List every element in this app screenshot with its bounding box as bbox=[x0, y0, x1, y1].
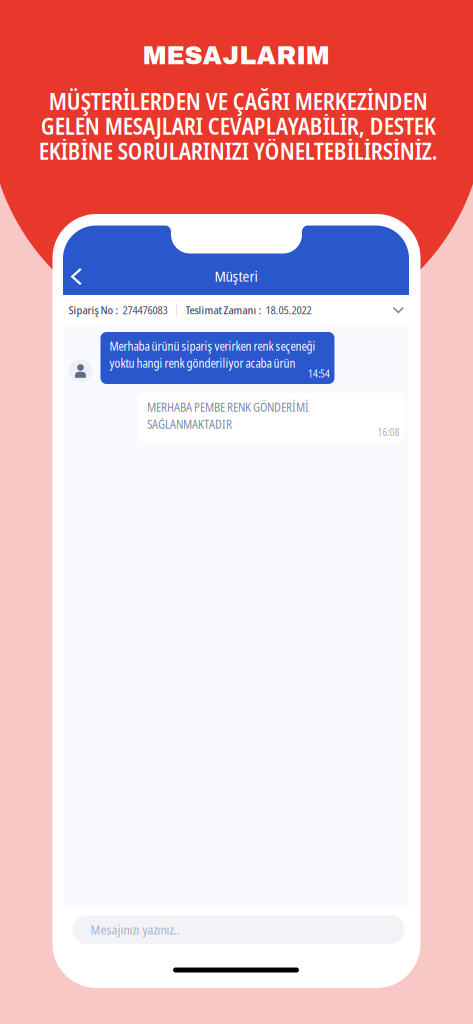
button[interactable]: Back bbox=[59, 260, 93, 294]
staticText: Teslimat Zamanı : bbox=[185, 302, 261, 318]
staticText: MÜŞTERİLERDEN VE ÇAĞRI MERKEZİNDEN GELEN… bbox=[38, 86, 437, 166]
staticText: 16:08 bbox=[377, 425, 399, 439]
button[interactable]: Mesajınızı yazınız.. bbox=[72, 915, 404, 944]
staticText: Mesajınızı yazınız.. bbox=[90, 921, 179, 938]
staticText: MESAJLARIM bbox=[142, 42, 329, 70]
button[interactable]: Sipariş No : bbox=[63, 295, 409, 325]
staticText: 274476083 bbox=[118, 302, 167, 318]
staticText: Merhaba ürünü sipariş verirken renk seçe… bbox=[109, 338, 315, 371]
staticText: 18.05.2022 bbox=[261, 302, 311, 318]
staticText: 14:54 bbox=[308, 367, 330, 380]
staticText: Müşteri bbox=[214, 266, 257, 286]
staticText: Sipariş No : bbox=[68, 302, 118, 318]
staticText: MERHABA PEMBE RENK GÖNDERİMİ SAĞLANMAKTA… bbox=[147, 399, 309, 432]
